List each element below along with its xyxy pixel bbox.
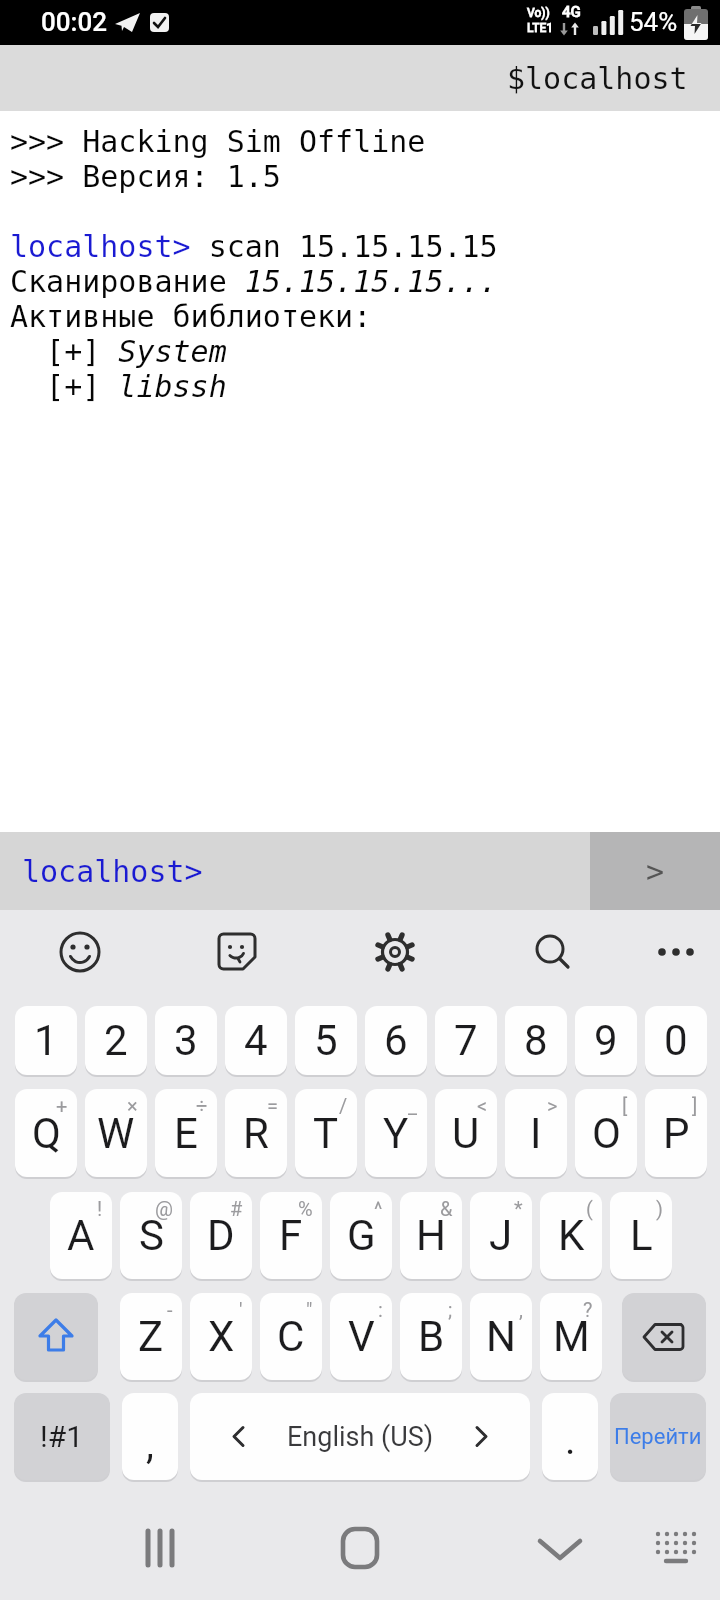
staticText: R bbox=[243, 1109, 269, 1158]
button[interactable]: 1 bbox=[15, 1006, 77, 1075]
button[interactable]: 0 bbox=[645, 1006, 707, 1075]
staticText: - bbox=[167, 1298, 173, 1321]
button[interactable]: . bbox=[542, 1393, 598, 1480]
button[interactable] bbox=[523, 922, 583, 982]
button[interactable]: S bbox=[120, 1192, 182, 1279]
staticText: H bbox=[416, 1211, 446, 1260]
button[interactable]: J bbox=[470, 1192, 532, 1279]
staticText: = bbox=[267, 1094, 278, 1117]
staticText: T bbox=[313, 1109, 339, 1158]
staticText: C bbox=[277, 1312, 305, 1361]
button[interactable]: 9 bbox=[575, 1006, 637, 1075]
button[interactable]: W bbox=[85, 1089, 147, 1177]
staticText: > bbox=[547, 1094, 558, 1117]
button[interactable]: H bbox=[400, 1192, 462, 1279]
staticText: Q bbox=[32, 1109, 61, 1158]
button[interactable]: 6 bbox=[365, 1006, 427, 1075]
staticText: Перейти bbox=[614, 1424, 702, 1450]
button[interactable]: 8 bbox=[505, 1006, 567, 1075]
button[interactable] bbox=[365, 922, 425, 982]
button[interactable]: G bbox=[330, 1192, 392, 1279]
staticText: ! bbox=[97, 1197, 103, 1220]
staticText: O bbox=[592, 1109, 621, 1158]
button[interactable]: Q bbox=[15, 1089, 77, 1177]
staticText: S bbox=[139, 1211, 164, 1260]
staticText: Сканирование 15.15.15.15... bbox=[10, 264, 498, 299]
staticText: > bbox=[646, 854, 665, 889]
button[interactable] bbox=[320, 1508, 400, 1588]
button[interactable]: A bbox=[50, 1192, 112, 1279]
button[interactable]: M bbox=[540, 1293, 602, 1380]
staticText: K bbox=[558, 1211, 585, 1260]
staticText: [+] libssh bbox=[10, 369, 227, 404]
staticText: U bbox=[452, 1109, 480, 1158]
staticText: ) bbox=[656, 1197, 663, 1220]
staticText: English (US) bbox=[287, 1421, 434, 1453]
button[interactable]: English (US) bbox=[190, 1393, 530, 1480]
staticText: , bbox=[519, 1298, 523, 1321]
button[interactable] bbox=[646, 922, 706, 982]
staticText: * bbox=[514, 1197, 523, 1220]
staticText: localhost> bbox=[22, 854, 203, 889]
button[interactable]: Перейти bbox=[610, 1393, 706, 1480]
button[interactable]: 3 bbox=[155, 1006, 217, 1075]
staticText: E bbox=[174, 1109, 198, 1158]
button[interactable]: R bbox=[225, 1089, 287, 1177]
staticText: 5 bbox=[314, 1016, 338, 1065]
staticText: 54% bbox=[629, 7, 678, 37]
button[interactable]: F bbox=[260, 1192, 322, 1279]
staticText: ( bbox=[586, 1197, 593, 1220]
staticText: × bbox=[127, 1094, 138, 1117]
button[interactable]: K bbox=[540, 1192, 602, 1279]
button[interactable]: V bbox=[330, 1293, 392, 1380]
button[interactable] bbox=[636, 1508, 716, 1588]
button[interactable]: 5 bbox=[295, 1006, 357, 1075]
staticText: $localhost bbox=[507, 61, 688, 96]
button[interactable]: X bbox=[190, 1293, 252, 1380]
button[interactable]: , bbox=[122, 1393, 178, 1480]
button[interactable]: I bbox=[505, 1089, 567, 1177]
button[interactable] bbox=[50, 922, 110, 982]
staticText: Vo)) bbox=[527, 6, 550, 20]
staticText: M bbox=[553, 1312, 590, 1361]
staticText: ; bbox=[448, 1298, 453, 1321]
button[interactable]: L bbox=[610, 1192, 672, 1279]
button[interactable]: C bbox=[260, 1293, 322, 1380]
button[interactable]: N bbox=[470, 1293, 532, 1380]
button[interactable] bbox=[207, 922, 267, 982]
staticText: P bbox=[663, 1109, 690, 1158]
button[interactable]: T bbox=[295, 1089, 357, 1177]
button[interactable]: 4 bbox=[225, 1006, 287, 1075]
staticText: ] bbox=[692, 1094, 698, 1117]
button[interactable]: 7 bbox=[435, 1006, 497, 1075]
staticText: " bbox=[306, 1298, 313, 1321]
staticText: L bbox=[630, 1211, 653, 1260]
button[interactable]: O bbox=[575, 1089, 637, 1177]
button[interactable] bbox=[14, 1293, 98, 1380]
button[interactable]: B bbox=[400, 1293, 462, 1380]
button[interactable]: !#1 bbox=[14, 1393, 110, 1480]
staticText: 3 bbox=[174, 1016, 198, 1065]
staticText: _ bbox=[408, 1094, 418, 1117]
staticText: 00:02 bbox=[41, 7, 108, 37]
staticText: B bbox=[418, 1312, 445, 1361]
button[interactable]: D bbox=[190, 1192, 252, 1279]
button[interactable]: 2 bbox=[85, 1006, 147, 1075]
button[interactable] bbox=[622, 1293, 706, 1380]
staticText: >>> Hacking Sim Offline bbox=[10, 124, 426, 159]
staticText: ÷ bbox=[196, 1094, 208, 1117]
button[interactable] bbox=[120, 1508, 200, 1588]
button[interactable]: U bbox=[435, 1089, 497, 1177]
staticText: 6 bbox=[384, 1016, 408, 1065]
button[interactable] bbox=[520, 1508, 600, 1588]
button[interactable]: Y bbox=[365, 1089, 427, 1177]
staticText: A bbox=[67, 1211, 95, 1260]
button[interactable]: > bbox=[590, 832, 720, 910]
staticText: [ bbox=[622, 1094, 628, 1117]
staticText: 0 bbox=[664, 1016, 688, 1065]
button[interactable]: P bbox=[645, 1089, 707, 1177]
button[interactable]: Z bbox=[120, 1293, 182, 1380]
button[interactable]: E bbox=[155, 1089, 217, 1177]
staticText: Y bbox=[383, 1109, 409, 1158]
staticText: F bbox=[279, 1211, 303, 1260]
